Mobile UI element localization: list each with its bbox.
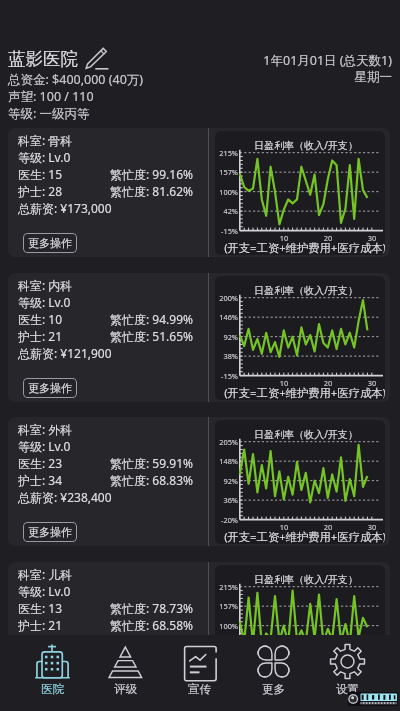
staticText: 更多操作: [28, 670, 72, 684]
staticText: 更多操作: [28, 525, 72, 539]
staticText: 148%: [215, 456, 238, 466]
staticText: -15%: [215, 226, 238, 236]
staticText: 总薪资: ¥121,900: [18, 345, 112, 361]
button[interactable]: 科室: 儿科: [8, 562, 390, 691]
staticText: 等级: Lv.0: [18, 294, 71, 310]
button[interactable]: 更多操作: [23, 378, 77, 398]
staticText: 繁忙度: 51.65%: [110, 328, 193, 344]
staticText: 157%: [215, 601, 238, 611]
staticText: 215%: [215, 582, 238, 592]
staticText: 36%: [215, 495, 238, 505]
staticText: 日盈利率（收入/开支）: [221, 427, 385, 441]
staticText: 更多: [262, 682, 285, 696]
staticText: 设置: [336, 682, 359, 696]
staticText: 评级: [114, 682, 137, 696]
button[interactable]: Rename hospital: [84, 46, 108, 70]
staticText: 科室: 内科: [18, 277, 73, 293]
staticText: 日盈利率（收入/开支）: [221, 283, 385, 297]
staticText: 10: [274, 233, 294, 243]
staticText: (开支=工资+维护费用+医疗成本): [220, 529, 385, 544]
staticText: 10: [274, 522, 294, 532]
staticText: 医生: 23: [18, 455, 63, 471]
staticText: 护士: 21: [18, 328, 63, 344]
staticText: 38%: [215, 351, 238, 361]
staticText: 护士: 21: [18, 617, 63, 633]
staticText: 200%: [215, 293, 238, 303]
staticText: 护士: 28: [18, 183, 63, 199]
staticText: 繁忙度: 81.62%: [110, 183, 193, 199]
staticText: -15%: [215, 660, 238, 670]
staticText: 等级: Lv.0: [18, 149, 71, 165]
staticText: 100%: [215, 187, 238, 197]
staticText: 繁忙度: 78.73%: [110, 600, 193, 616]
staticText: 10: [274, 378, 294, 388]
staticText: 更多操作: [28, 236, 72, 250]
staticText: 科室: 骨科: [18, 132, 73, 148]
staticText: 繁忙度: 99.16%: [110, 166, 193, 182]
staticText: 日盈利率（收入/开支）: [221, 138, 385, 152]
button[interactable]: 医院: [16, 635, 89, 711]
staticText: 1年01月01日 (总天数1): [263, 52, 392, 69]
staticText: 等级: Lv.0: [18, 438, 71, 454]
staticText: 100%: [215, 621, 238, 631]
staticText: 总薪资: ¥238,400: [18, 489, 112, 505]
staticText: 等级: 一级丙等: [8, 105, 90, 122]
button[interactable]: 科室: 外科: [8, 417, 390, 546]
staticText: 宣传: [188, 682, 211, 696]
staticText: 42%: [215, 206, 238, 216]
staticText: 20: [318, 233, 338, 243]
staticText: (开支=工资+维护费用+医疗成本): [220, 674, 385, 689]
staticText: (开支=工资+维护费用+医疗成本): [220, 385, 385, 400]
staticText: 繁忙度: 68.83%: [110, 472, 193, 488]
staticText: 92%: [215, 476, 238, 486]
button[interactable]: 更多操作: [23, 667, 77, 687]
staticText: 10: [274, 667, 294, 677]
staticText: 繁忙度: 59.91%: [110, 455, 193, 471]
staticText: 蓝影医院: [8, 48, 78, 70]
staticText: 护士: 34: [18, 472, 63, 488]
staticText: 42%: [215, 640, 238, 650]
staticText: 日盈利率（收入/开支）: [221, 572, 385, 586]
staticText: 总资金: $400,000 (40万): [8, 71, 144, 88]
staticText: 20: [318, 378, 338, 388]
staticText: 星期一: [354, 69, 392, 85]
button[interactable]: 设置: [310, 635, 384, 711]
staticText: (开支=工资+维护费用+医疗成本): [220, 240, 385, 255]
staticText: 92%: [215, 332, 238, 342]
staticText: 205%: [215, 437, 238, 447]
staticText: 科室: 儿科: [18, 566, 73, 582]
button[interactable]: 更多操作: [23, 522, 77, 542]
staticText: 医生: 15: [18, 166, 63, 182]
staticText: -20%: [215, 515, 238, 525]
staticText: 等级: Lv.0: [18, 583, 71, 599]
staticText: 157%: [215, 167, 238, 177]
button[interactable]: 更多: [236, 635, 310, 711]
button[interactable]: 科室: 内科: [8, 273, 390, 402]
staticText: 科室: 外科: [18, 421, 73, 437]
staticText: 215%: [215, 148, 238, 158]
staticText: 30: [362, 233, 382, 243]
staticText: 繁忙度: 94.99%: [110, 311, 193, 327]
staticText: 20: [318, 522, 338, 532]
staticText: 146%: [215, 312, 238, 322]
staticText: 20: [318, 667, 338, 677]
staticText: 医院: [41, 682, 64, 696]
button[interactable]: 更多操作: [23, 233, 77, 253]
staticText: 总薪资: ¥150,000: [18, 634, 112, 650]
staticText: 繁忙度: 68.58%: [110, 617, 193, 633]
button[interactable]: 评级: [89, 635, 162, 711]
staticText: 声望: 100 / 110: [8, 88, 94, 105]
button[interactable]: 科室: 骨科: [8, 128, 390, 257]
staticText: 30: [362, 522, 382, 532]
staticText: 医生: 10: [18, 311, 63, 327]
staticText: -15%: [215, 371, 238, 381]
staticText: 总薪资: ¥173,000: [18, 200, 112, 216]
button[interactable]: 宣传: [162, 635, 236, 711]
staticText: 30: [362, 378, 382, 388]
staticText: 医生: 13: [18, 600, 63, 616]
staticText: 更多操作: [28, 381, 72, 395]
